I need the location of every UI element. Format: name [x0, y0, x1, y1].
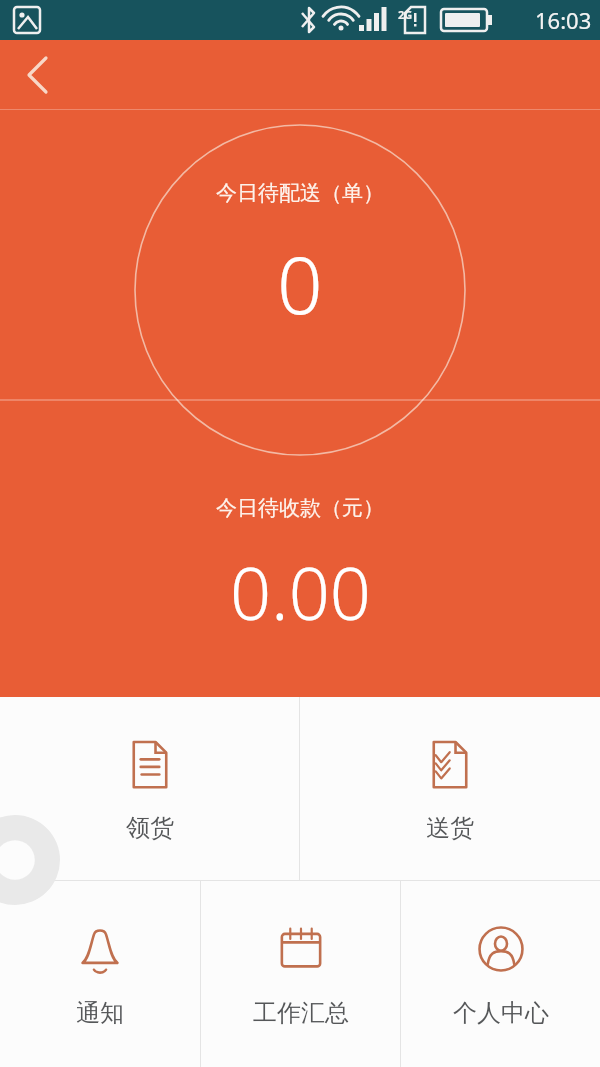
button[interactable]: 领货	[0, 697, 299, 880]
staticText: 0.00	[230, 543, 371, 641]
button[interactable]: 送货	[300, 697, 600, 880]
button[interactable]: Back	[6, 44, 68, 106]
staticText: 16:03	[535, 5, 592, 35]
staticText: 领货	[126, 813, 174, 843]
staticText: 0	[277, 228, 323, 337]
staticText: 通知	[76, 998, 124, 1028]
button[interactable]: 个人中心	[401, 881, 600, 1067]
other: Assistive touch	[0, 815, 60, 905]
staticText: 送货	[426, 813, 474, 843]
staticText: 今日待收款（元）	[216, 495, 384, 521]
staticText: 今日待配送（单）	[216, 180, 384, 206]
staticText: 个人中心	[453, 998, 549, 1028]
staticText: 工作汇总	[253, 998, 349, 1028]
button[interactable]: 工作汇总	[201, 881, 400, 1067]
staticText: 2G	[398, 7, 413, 22]
button[interactable]: 通知	[0, 881, 200, 1067]
